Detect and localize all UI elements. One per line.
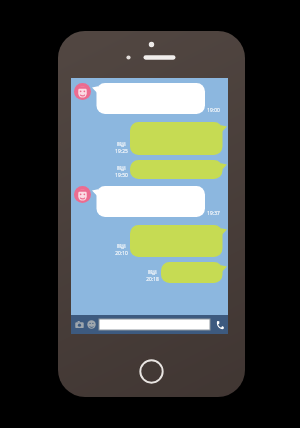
button[interactable]: Profile photo: [74, 83, 91, 100]
button[interactable]: Call: [212, 318, 225, 331]
button[interactable]: Camera: [74, 319, 85, 330]
staticText: 19:25: [115, 148, 128, 155]
staticText: 20:10: [115, 250, 128, 257]
button[interactable]: [92, 186, 205, 217]
staticText: 20:18: [146, 276, 159, 283]
button[interactable]: Emoji: [86, 319, 97, 330]
staticText: 既読: [117, 244, 126, 250]
button[interactable]: Profile photo: [74, 186, 91, 203]
staticText: 19:50: [115, 172, 128, 179]
button[interactable]: [92, 83, 205, 114]
button[interactable]: [99, 319, 210, 330]
staticText: 19:00: [207, 107, 220, 114]
button[interactable]: [130, 160, 227, 179]
staticText: 既読: [148, 270, 157, 276]
button[interactable]: Home: [139, 359, 164, 384]
staticText: 19:37: [207, 210, 220, 217]
button[interactable]: [130, 225, 227, 257]
staticText: 既読: [117, 142, 126, 148]
button[interactable]: [161, 262, 227, 283]
staticText: 既読: [117, 166, 126, 172]
button[interactable]: [130, 122, 227, 155]
